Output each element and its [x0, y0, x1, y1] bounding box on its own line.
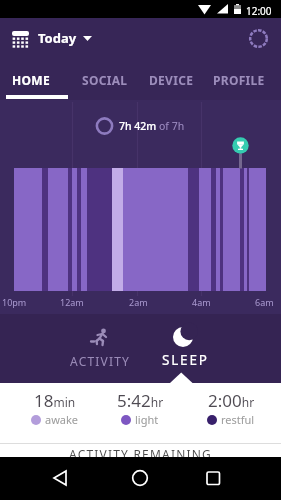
staticText: 12:00: [246, 4, 272, 18]
staticText: SOCIAL: [82, 72, 128, 88]
button[interactable]: [122, 459, 158, 498]
staticText: SLEEP: [162, 351, 209, 369]
staticText: ACTIVITY: [70, 353, 131, 369]
button[interactable]: SLEEP: [145, 324, 225, 369]
staticText: DEVICE: [149, 72, 194, 88]
button[interactable]: PROFILE: [204, 60, 274, 100]
button[interactable]: 5:42hr: [97, 389, 183, 427]
button[interactable]: [42, 459, 78, 498]
staticText: 7h 42m of 7h: [119, 119, 185, 133]
staticText: 2am: [129, 296, 148, 308]
staticText: 4am: [192, 296, 211, 308]
button[interactable]: Today: [38, 29, 93, 47]
staticText: Today: [38, 29, 77, 47]
button[interactable]: 18min: [12, 389, 97, 427]
staticText: awake: [45, 412, 79, 427]
button[interactable]: HOME: [0, 60, 66, 100]
staticText: 6am: [255, 296, 274, 308]
staticText: 12am: [60, 296, 84, 308]
staticText: 2:00hr: [208, 389, 255, 412]
button[interactable]: ACTIVITY: [60, 327, 140, 369]
button[interactable]: [248, 28, 270, 50]
button[interactable]: [8, 27, 34, 53]
button[interactable]: [195, 459, 231, 498]
button[interactable]: DEVICE: [136, 60, 206, 100]
staticText: ACTIVITY REMAINING: [69, 446, 213, 459]
staticText: restful: [221, 412, 255, 427]
staticText: 18min: [34, 389, 76, 412]
staticText: light: [135, 412, 159, 427]
staticText: PROFILE: [213, 72, 265, 88]
button[interactable]: 2:00hr: [188, 389, 274, 427]
staticText: 5:42hr: [117, 389, 164, 412]
staticText: HOME: [12, 72, 50, 88]
button[interactable]: SOCIAL: [70, 60, 140, 100]
staticText: 10pm: [2, 296, 27, 308]
